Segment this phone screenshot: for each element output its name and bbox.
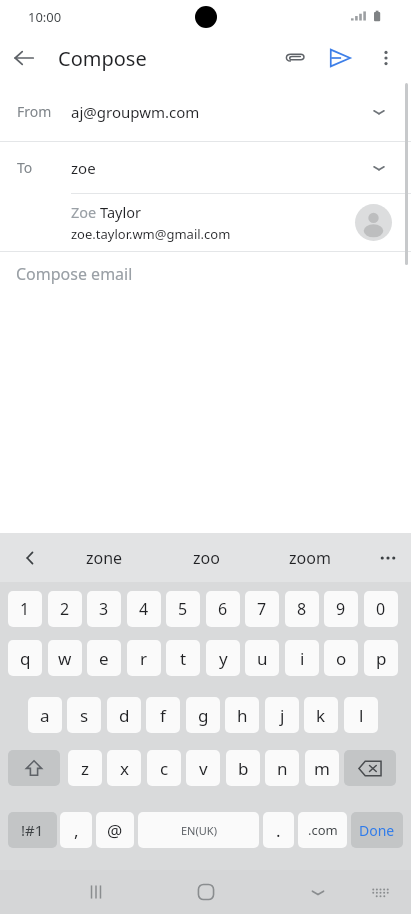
staticText: 1	[20, 598, 30, 620]
staticText: 8	[297, 598, 307, 620]
button[interactable]: More suggestions	[372, 542, 404, 574]
staticText: q	[20, 647, 31, 670]
button[interactable]: From	[0, 82, 411, 141]
button[interactable]: zoom	[263, 533, 356, 582]
staticText: j	[280, 704, 285, 727]
button[interactable]: u	[245, 640, 279, 676]
button[interactable]: i	[285, 640, 319, 676]
button[interactable]: Shift	[8, 750, 60, 786]
button[interactable]: 6	[206, 591, 240, 627]
staticText: EN(UK)	[181, 823, 217, 838]
button[interactable]: d	[107, 697, 141, 733]
button[interactable]: Previous suggestions	[14, 542, 46, 574]
button[interactable]: q	[8, 640, 42, 676]
staticText: zone	[86, 547, 123, 569]
button[interactable]: s	[67, 697, 101, 733]
button[interactable]: f	[146, 697, 180, 733]
button[interactable]: p	[364, 640, 398, 676]
button[interactable]: EN(UK)	[138, 812, 259, 848]
staticText: u	[257, 647, 268, 670]
button[interactable]: w	[48, 640, 82, 676]
button[interactable]: Send	[317, 35, 363, 81]
button[interactable]: 1	[8, 591, 42, 627]
button[interactable]: 5	[166, 591, 200, 627]
staticText: 10:00	[28, 8, 62, 26]
staticText: z	[81, 757, 89, 780]
staticText: @	[107, 819, 123, 842]
staticText: p	[376, 647, 387, 670]
staticText: 2	[60, 598, 70, 620]
staticText: x	[120, 757, 129, 780]
button[interactable]: .com	[298, 812, 347, 848]
staticText: b	[238, 757, 249, 780]
staticText: k	[316, 704, 326, 727]
button[interactable]: h	[225, 697, 259, 733]
staticText: zoom	[289, 547, 331, 569]
button[interactable]: Recent apps	[70, 870, 122, 914]
staticText: 9	[336, 598, 346, 620]
staticText: m	[314, 757, 330, 780]
staticText: w	[58, 647, 72, 670]
button[interactable]: l	[344, 697, 378, 733]
button[interactable]: g	[186, 697, 220, 733]
staticText: From	[17, 102, 52, 121]
staticText: aj@groupwm.com	[71, 102, 200, 122]
button[interactable]: 7	[245, 591, 279, 627]
staticText: .	[276, 819, 281, 842]
button[interactable]: n	[265, 750, 299, 786]
button[interactable]: v	[186, 750, 220, 786]
staticText: y	[219, 647, 228, 670]
button[interactable]: 9	[324, 591, 358, 627]
staticText: Compose	[58, 45, 147, 72]
button[interactable]: Home	[180, 870, 232, 914]
button[interactable]: Backspace	[344, 750, 396, 786]
button[interactable]: e	[87, 640, 121, 676]
staticText: .com	[308, 821, 338, 839]
staticText: a	[40, 704, 50, 727]
button[interactable]: More options	[363, 35, 409, 81]
staticText: Compose email	[16, 263, 133, 285]
button[interactable]: r	[127, 640, 161, 676]
button[interactable]: b	[226, 750, 260, 786]
staticText: r	[140, 647, 148, 670]
staticText: Zoe Taylor	[71, 202, 141, 222]
staticText: zoe.taylor.wm@gmail.com	[71, 225, 231, 243]
staticText: t	[180, 647, 187, 670]
staticText: i	[300, 647, 305, 670]
button[interactable]: @	[96, 812, 134, 848]
button[interactable]: Hide keyboard	[292, 870, 344, 914]
button[interactable]: 2	[48, 591, 82, 627]
button[interactable]: zone	[58, 533, 151, 582]
button[interactable]: 0	[364, 591, 398, 627]
staticText: !#1	[21, 820, 44, 840]
button[interactable]: y	[206, 640, 240, 676]
button[interactable]: m	[305, 750, 339, 786]
button[interactable]: o	[324, 640, 358, 676]
button[interactable]: 4	[127, 591, 161, 627]
staticText: d	[119, 704, 130, 727]
button[interactable]: ,	[60, 812, 92, 848]
button[interactable]: 8	[285, 591, 319, 627]
staticText: g	[198, 704, 209, 727]
button[interactable]: !#1	[8, 812, 57, 848]
button[interactable]: Done	[351, 812, 403, 848]
button[interactable]: .	[263, 812, 294, 848]
button[interactable]: 3	[87, 591, 121, 627]
button[interactable]: t	[166, 640, 200, 676]
staticText: v	[199, 757, 208, 780]
button[interactable]: Zoe Taylor	[0, 194, 411, 251]
button[interactable]: x	[107, 750, 141, 786]
button[interactable]: Attach file	[271, 35, 317, 81]
button[interactable]: Change keyboard	[356, 870, 404, 914]
staticText: zoe	[71, 158, 96, 178]
button[interactable]: j	[265, 697, 299, 733]
button[interactable]: Back	[0, 34, 48, 82]
staticText: f	[160, 704, 166, 727]
button[interactable]: c	[147, 750, 181, 786]
button[interactable]: a	[28, 697, 62, 733]
button[interactable]: To	[0, 142, 411, 193]
staticText: e	[99, 647, 109, 670]
button[interactable]: k	[304, 697, 338, 733]
button[interactable]: z	[68, 750, 102, 786]
button[interactable]: zoo	[160, 533, 253, 582]
